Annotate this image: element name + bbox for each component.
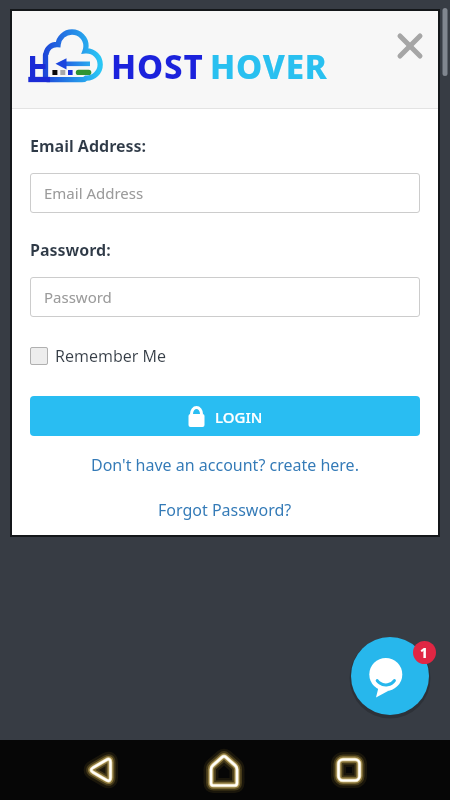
button[interactable]: Forgot Password? — [158, 499, 292, 521]
staticText: LOGIN — [215, 407, 263, 427]
button[interactable]: Remember Me — [30, 345, 167, 367]
button[interactable] — [351, 637, 429, 715]
button[interactable] — [70, 740, 130, 800]
staticText: Email Address — [44, 183, 144, 203]
staticText: HOST — [111, 44, 204, 89]
button[interactable]: LOGIN — [30, 396, 420, 436]
staticText: HOVER — [210, 44, 328, 89]
button[interactable]: Email Address — [30, 173, 420, 213]
button[interactable]: Password — [30, 277, 420, 317]
staticText: Password — [44, 287, 112, 307]
button[interactable] — [394, 30, 426, 62]
staticText: Email Address: — [30, 135, 147, 157]
button[interactable] — [319, 740, 379, 800]
staticText: 1 — [420, 643, 429, 662]
button[interactable] — [194, 740, 254, 800]
staticText: Password: — [30, 239, 111, 261]
staticText: Remember Me — [55, 345, 167, 367]
button[interactable]: Don't have an account? create here. — [91, 454, 359, 476]
